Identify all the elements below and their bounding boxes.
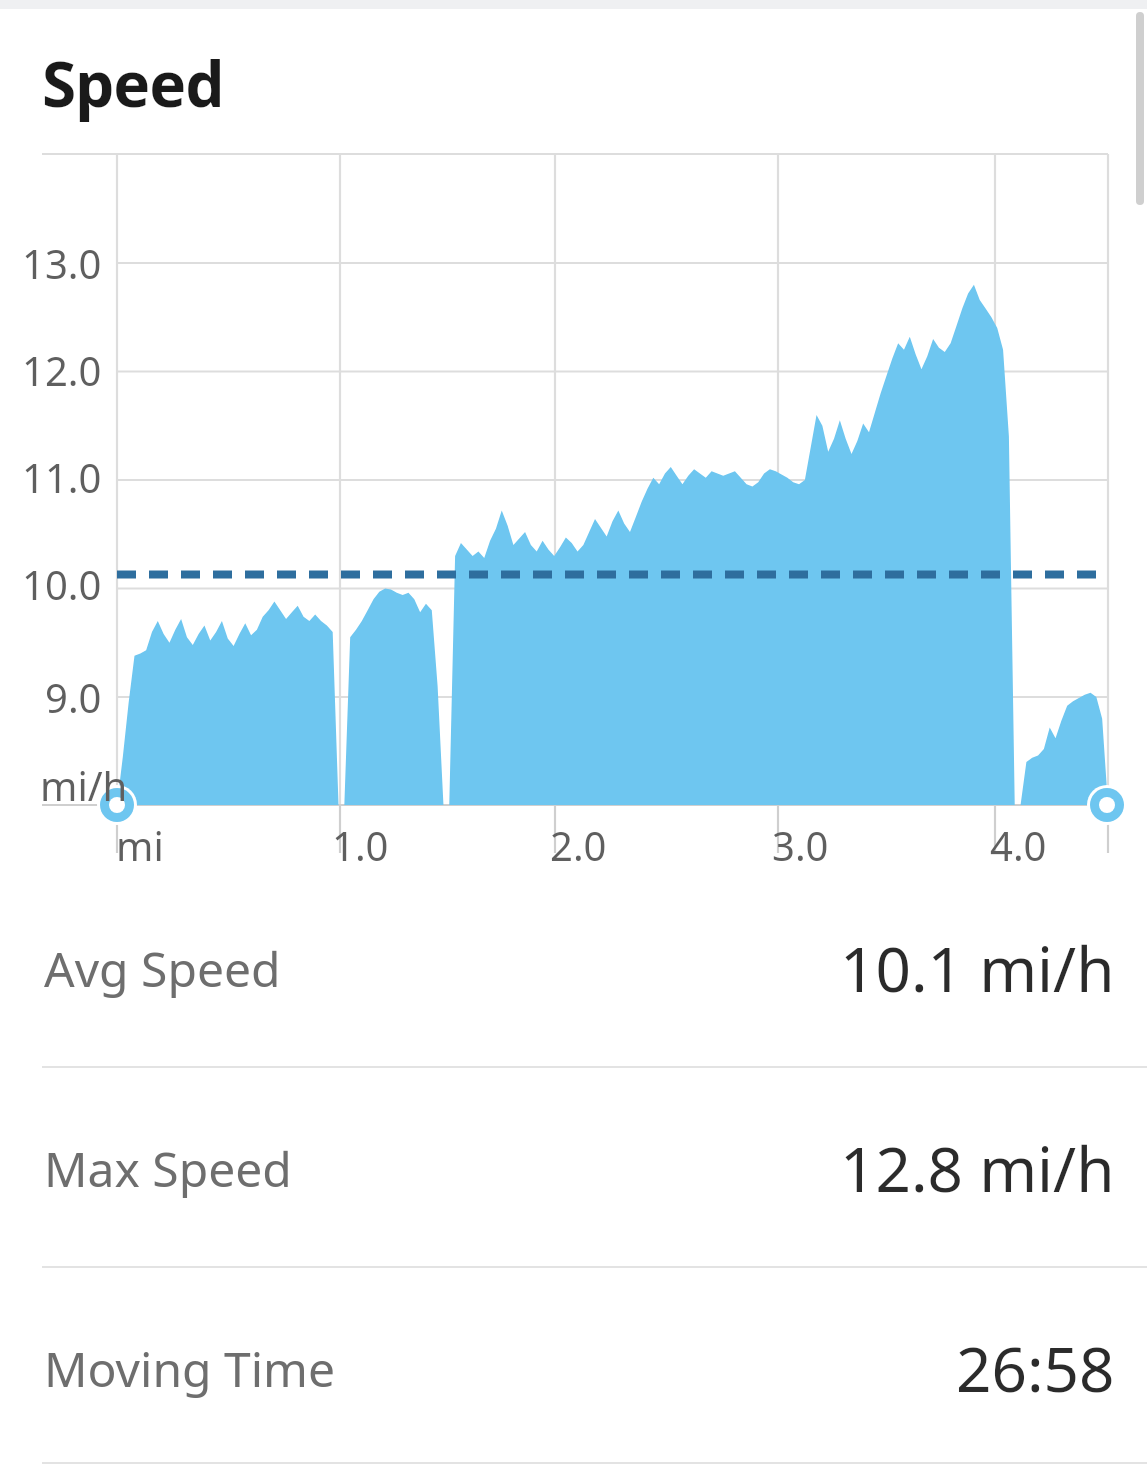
button[interactable]: Moving Time [0, 1268, 1147, 1468]
staticText: 9.0 [45, 670, 102, 724]
staticText: 10.0 [22, 557, 102, 611]
button[interactable]: Avg Speed [0, 868, 1147, 1068]
staticText: 26:58 [956, 1326, 1115, 1410]
staticText: 1.0 [332, 818, 389, 872]
staticText: 13.0 [22, 236, 102, 290]
staticText: Avg Speed [44, 936, 281, 1001]
staticText: Moving Time [44, 1336, 336, 1401]
staticText: 3.0 [772, 818, 829, 872]
staticText: mi/h [40, 758, 128, 812]
staticText: Max Speed [44, 1136, 292, 1201]
staticText: Speed [42, 41, 224, 125]
staticText: 11.0 [22, 450, 102, 504]
staticText: 12.8 mi/h [840, 1126, 1115, 1210]
button[interactable]: Max Speed [0, 1068, 1147, 1268]
staticText: mi [116, 818, 164, 872]
staticText: 10.1 mi/h [840, 926, 1115, 1010]
staticText: 12.0 [22, 343, 102, 397]
staticText: 2.0 [550, 818, 607, 872]
staticText: 4.0 [990, 818, 1047, 872]
